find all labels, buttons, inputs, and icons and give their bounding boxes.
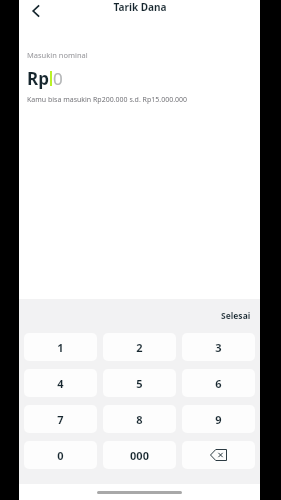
staticText: 4: [57, 376, 64, 391]
staticText: 7: [57, 412, 64, 427]
staticText: 6: [215, 376, 222, 391]
staticText: 9: [215, 412, 222, 427]
button[interactable]: 7: [24, 405, 97, 433]
button[interactable]: 0: [24, 441, 97, 469]
staticText: 0: [57, 448, 64, 463]
staticText: Tarik Dana: [113, 0, 167, 14]
button[interactable]: 9: [182, 405, 255, 433]
button[interactable]: 4: [24, 369, 97, 397]
button[interactable]: 1: [24, 333, 97, 361]
staticText: 2: [136, 340, 143, 355]
staticText: 000: [130, 448, 149, 463]
button[interactable]: 6: [182, 369, 255, 397]
staticText: Selesai: [221, 310, 251, 322]
button[interactable]: Back: [22, 0, 50, 22]
staticText: Kamu bisa masukin Rp200.000 s.d. Rp15.00…: [27, 95, 188, 105]
button[interactable]: 5: [103, 369, 176, 397]
button[interactable]: 3: [182, 333, 255, 361]
staticText: Rp: [27, 67, 49, 90]
button[interactable]: 000: [103, 441, 176, 469]
staticText: 0: [53, 67, 63, 90]
button[interactable]: Backspace: [182, 441, 255, 469]
staticText: 8: [136, 412, 143, 427]
button[interactable]: 8: [103, 405, 176, 433]
staticText: 5: [136, 376, 143, 391]
button[interactable]: 2: [103, 333, 176, 361]
button[interactable]: Selesai: [212, 305, 260, 327]
staticText: 1: [57, 340, 64, 355]
staticText: 3: [215, 340, 222, 355]
staticText: Masukin nominal: [27, 50, 88, 60]
